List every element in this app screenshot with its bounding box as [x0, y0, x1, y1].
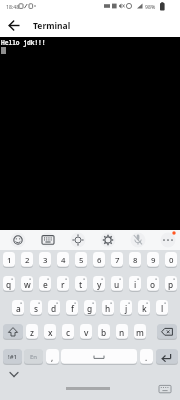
button[interactable]: g — [84, 300, 96, 316]
button[interactable]: a — [12, 300, 24, 316]
staticText: k — [142, 303, 147, 314]
button[interactable]: c — [62, 324, 74, 340]
button[interactable]: 9 — [147, 252, 159, 268]
staticText: 6 — [97, 255, 102, 266]
staticText: Terminal — [33, 20, 71, 32]
button[interactable] — [129, 231, 147, 249]
staticText: 3 — [43, 255, 48, 266]
button[interactable] — [6, 368, 22, 380]
button[interactable]: m — [134, 324, 146, 340]
staticText: y — [97, 279, 102, 290]
button[interactable]: Hello jdk!!! — [0, 37, 180, 230]
staticText: e — [43, 279, 48, 290]
button[interactable]: 5 — [75, 252, 87, 268]
staticText: v — [84, 327, 89, 338]
button[interactable] — [156, 383, 174, 395]
button[interactable] — [156, 349, 178, 365]
button[interactable]: 8 — [129, 252, 141, 268]
staticText: g — [87, 303, 93, 314]
staticText: 1 — [7, 255, 12, 266]
staticText: x — [48, 327, 53, 338]
staticText: 98% — [145, 3, 156, 10]
button[interactable]: d — [48, 300, 60, 316]
button[interactable]: i — [129, 276, 141, 292]
button[interactable]: o — [147, 276, 159, 292]
button[interactable]: x — [44, 324, 56, 340]
staticText: u — [114, 279, 120, 290]
staticText: z — [30, 327, 34, 338]
staticText: p — [168, 279, 174, 290]
staticText: n — [119, 327, 125, 338]
button[interactable]: z — [26, 324, 38, 340]
button[interactable]: p — [165, 276, 177, 292]
button[interactable]: q — [3, 276, 15, 292]
button[interactable]: , — [46, 349, 59, 365]
button[interactable]: w — [21, 276, 33, 292]
staticText: m — [136, 327, 144, 338]
staticText: 0 — [169, 255, 174, 266]
button[interactable]: k — [138, 300, 150, 316]
staticText: , — [51, 352, 54, 363]
staticText: 2 — [25, 255, 30, 266]
button[interactable]: 4 — [57, 252, 69, 268]
button[interactable]: h — [102, 300, 114, 316]
button[interactable]: 6 — [93, 252, 105, 268]
staticText: 8 — [133, 255, 138, 266]
button[interactable]: 1 — [3, 252, 15, 268]
staticText: h — [105, 303, 111, 314]
staticText: r — [61, 279, 65, 290]
button[interactable]: l — [156, 300, 168, 316]
button[interactable]: v — [80, 324, 92, 340]
button[interactable] — [61, 349, 137, 365]
button[interactable]: u — [111, 276, 123, 292]
button[interactable]: e — [39, 276, 51, 292]
staticText: w — [24, 279, 31, 290]
button[interactable]: 0 — [165, 252, 177, 268]
staticText: c — [66, 327, 71, 338]
staticText: 7 — [115, 255, 120, 266]
staticText: !#1 — [8, 353, 17, 361]
staticText: d — [51, 303, 57, 314]
button[interactable]: . — [140, 349, 153, 365]
staticText: 18:48 — [6, 3, 20, 10]
button[interactable]: 3 — [39, 252, 51, 268]
staticText: a — [16, 303, 21, 314]
button[interactable]: 7 — [111, 252, 123, 268]
staticText: . — [145, 352, 148, 363]
staticText: s — [34, 303, 39, 314]
button[interactable]: En — [24, 349, 43, 365]
button[interactable]: f — [66, 300, 78, 316]
staticText: 9 — [151, 255, 156, 266]
button[interactable]: y — [93, 276, 105, 292]
button[interactable] — [159, 231, 177, 249]
button[interactable]: !#1 — [3, 349, 22, 365]
button[interactable] — [9, 231, 27, 249]
button[interactable] — [5, 16, 24, 35]
staticText: t — [79, 279, 83, 290]
button[interactable]: b — [98, 324, 110, 340]
button[interactable]: n — [116, 324, 128, 340]
staticText: 5 — [79, 255, 84, 266]
button[interactable]: r — [57, 276, 69, 292]
button[interactable] — [3, 324, 23, 340]
staticText: j — [125, 303, 128, 314]
staticText: b — [101, 327, 107, 338]
button[interactable]: t — [75, 276, 87, 292]
button[interactable]: j — [120, 300, 132, 316]
staticText: o — [150, 279, 156, 290]
button[interactable] — [157, 324, 177, 340]
staticText: 4 — [61, 255, 66, 266]
staticText: q — [6, 279, 12, 290]
staticText: l — [161, 303, 164, 314]
staticText: f — [71, 303, 74, 314]
button[interactable] — [39, 231, 57, 249]
button[interactable] — [99, 231, 117, 249]
button[interactable] — [69, 231, 87, 249]
staticText: En — [30, 353, 38, 361]
staticText: i — [134, 279, 137, 290]
button[interactable]: s — [30, 300, 42, 316]
staticText: Hello jdk!!! — [1, 38, 46, 46]
button[interactable]: 2 — [21, 252, 33, 268]
